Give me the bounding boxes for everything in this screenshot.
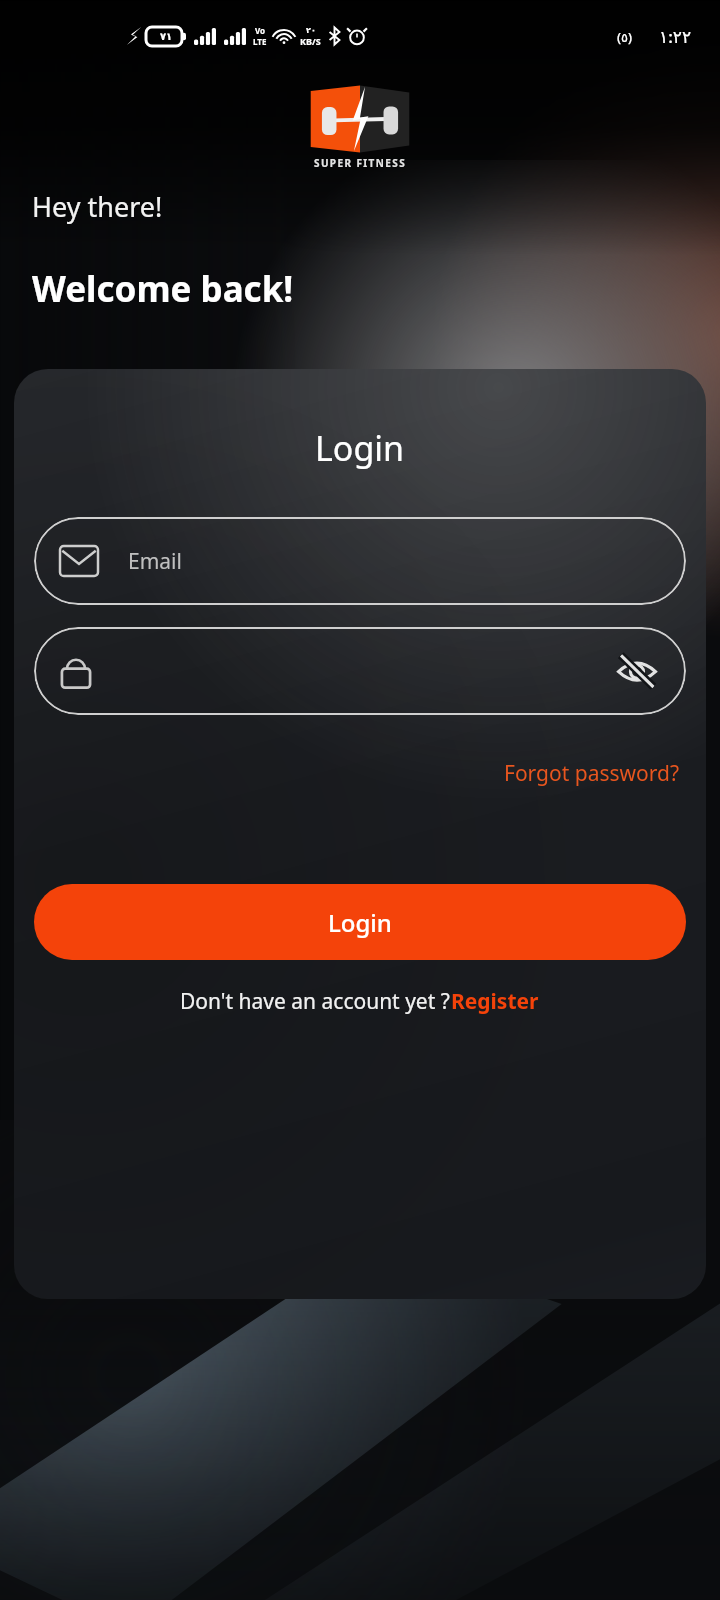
button[interactable]: Login (34, 884, 686, 960)
staticText: Hey there! (32, 188, 163, 225)
staticText: Vo (255, 25, 266, 36)
staticText: Welcome back! (32, 265, 294, 313)
staticText: SUPER FITNESS (314, 156, 407, 170)
button[interactable]: Show password (34, 627, 686, 715)
staticText: KB/S (300, 35, 321, 47)
staticText: ٢٠ (306, 26, 316, 35)
staticText: ٧١ (160, 31, 173, 43)
button[interactable]: Show password (614, 648, 660, 694)
staticText: LTE (253, 36, 267, 47)
staticText: Don't have an account yet ? (180, 987, 450, 1016)
button[interactable]: Email (34, 517, 686, 605)
staticText: Login (315, 425, 405, 471)
button[interactable]: Forgot password? (500, 755, 684, 792)
staticText: Register (451, 987, 539, 1016)
staticText: Email (128, 547, 182, 576)
staticText: Forgot password? (504, 759, 680, 788)
staticText: Login (328, 906, 392, 939)
button[interactable]: Register (450, 984, 540, 1019)
staticText: ١:٢٢ (659, 25, 692, 48)
staticText: (٥) (617, 28, 633, 46)
